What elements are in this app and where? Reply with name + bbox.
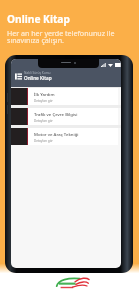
staticText: Her an her yerde telefonunuz ile sınavın… xyxy=(7,28,115,46)
staticText: Online Kitap xyxy=(7,12,70,26)
staticText: Motor ve Araç Tekniği xyxy=(34,131,79,137)
button[interactable]: Trafik ve Çevre Bilgisi xyxy=(11,108,118,125)
staticText: İlk Yardım xyxy=(34,91,55,97)
staticText: Detayları gör xyxy=(34,119,53,123)
button[interactable]: İlk Yardım xyxy=(11,88,118,105)
staticText: Online Kitap xyxy=(24,75,52,81)
staticText: Nakli Sürüş Kursu xyxy=(24,71,51,75)
staticText: Detayları gör xyxy=(34,139,53,143)
staticText: Trafik ve Çevre Bilgisi xyxy=(34,111,78,117)
staticText: Detayları gör xyxy=(34,99,53,103)
button[interactable]: Motor ve Araç Tekniği xyxy=(11,128,118,145)
